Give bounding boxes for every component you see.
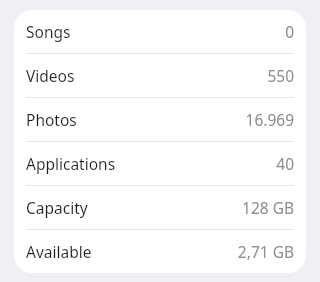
button[interactable]: Songs — [14, 10, 306, 53]
staticText: 128 GB — [242, 197, 294, 218]
button[interactable]: Available — [14, 230, 306, 273]
staticText: 0 — [285, 21, 294, 42]
staticText: Applications — [26, 153, 116, 174]
staticText: 2,71 GB — [237, 241, 294, 262]
button[interactable]: Capacity — [14, 186, 306, 229]
button[interactable]: Videos — [14, 54, 306, 97]
staticText: Videos — [26, 65, 75, 86]
staticText: Photos — [26, 109, 77, 130]
staticText: 40 — [276, 153, 294, 174]
staticText: 550 — [267, 65, 294, 86]
staticText: 16.969 — [245, 109, 294, 130]
staticText: Capacity — [26, 197, 88, 218]
button[interactable]: Applications — [14, 142, 306, 185]
staticText: Available — [26, 241, 92, 262]
button[interactable]: Photos — [14, 98, 306, 141]
staticText: Songs — [26, 21, 71, 42]
